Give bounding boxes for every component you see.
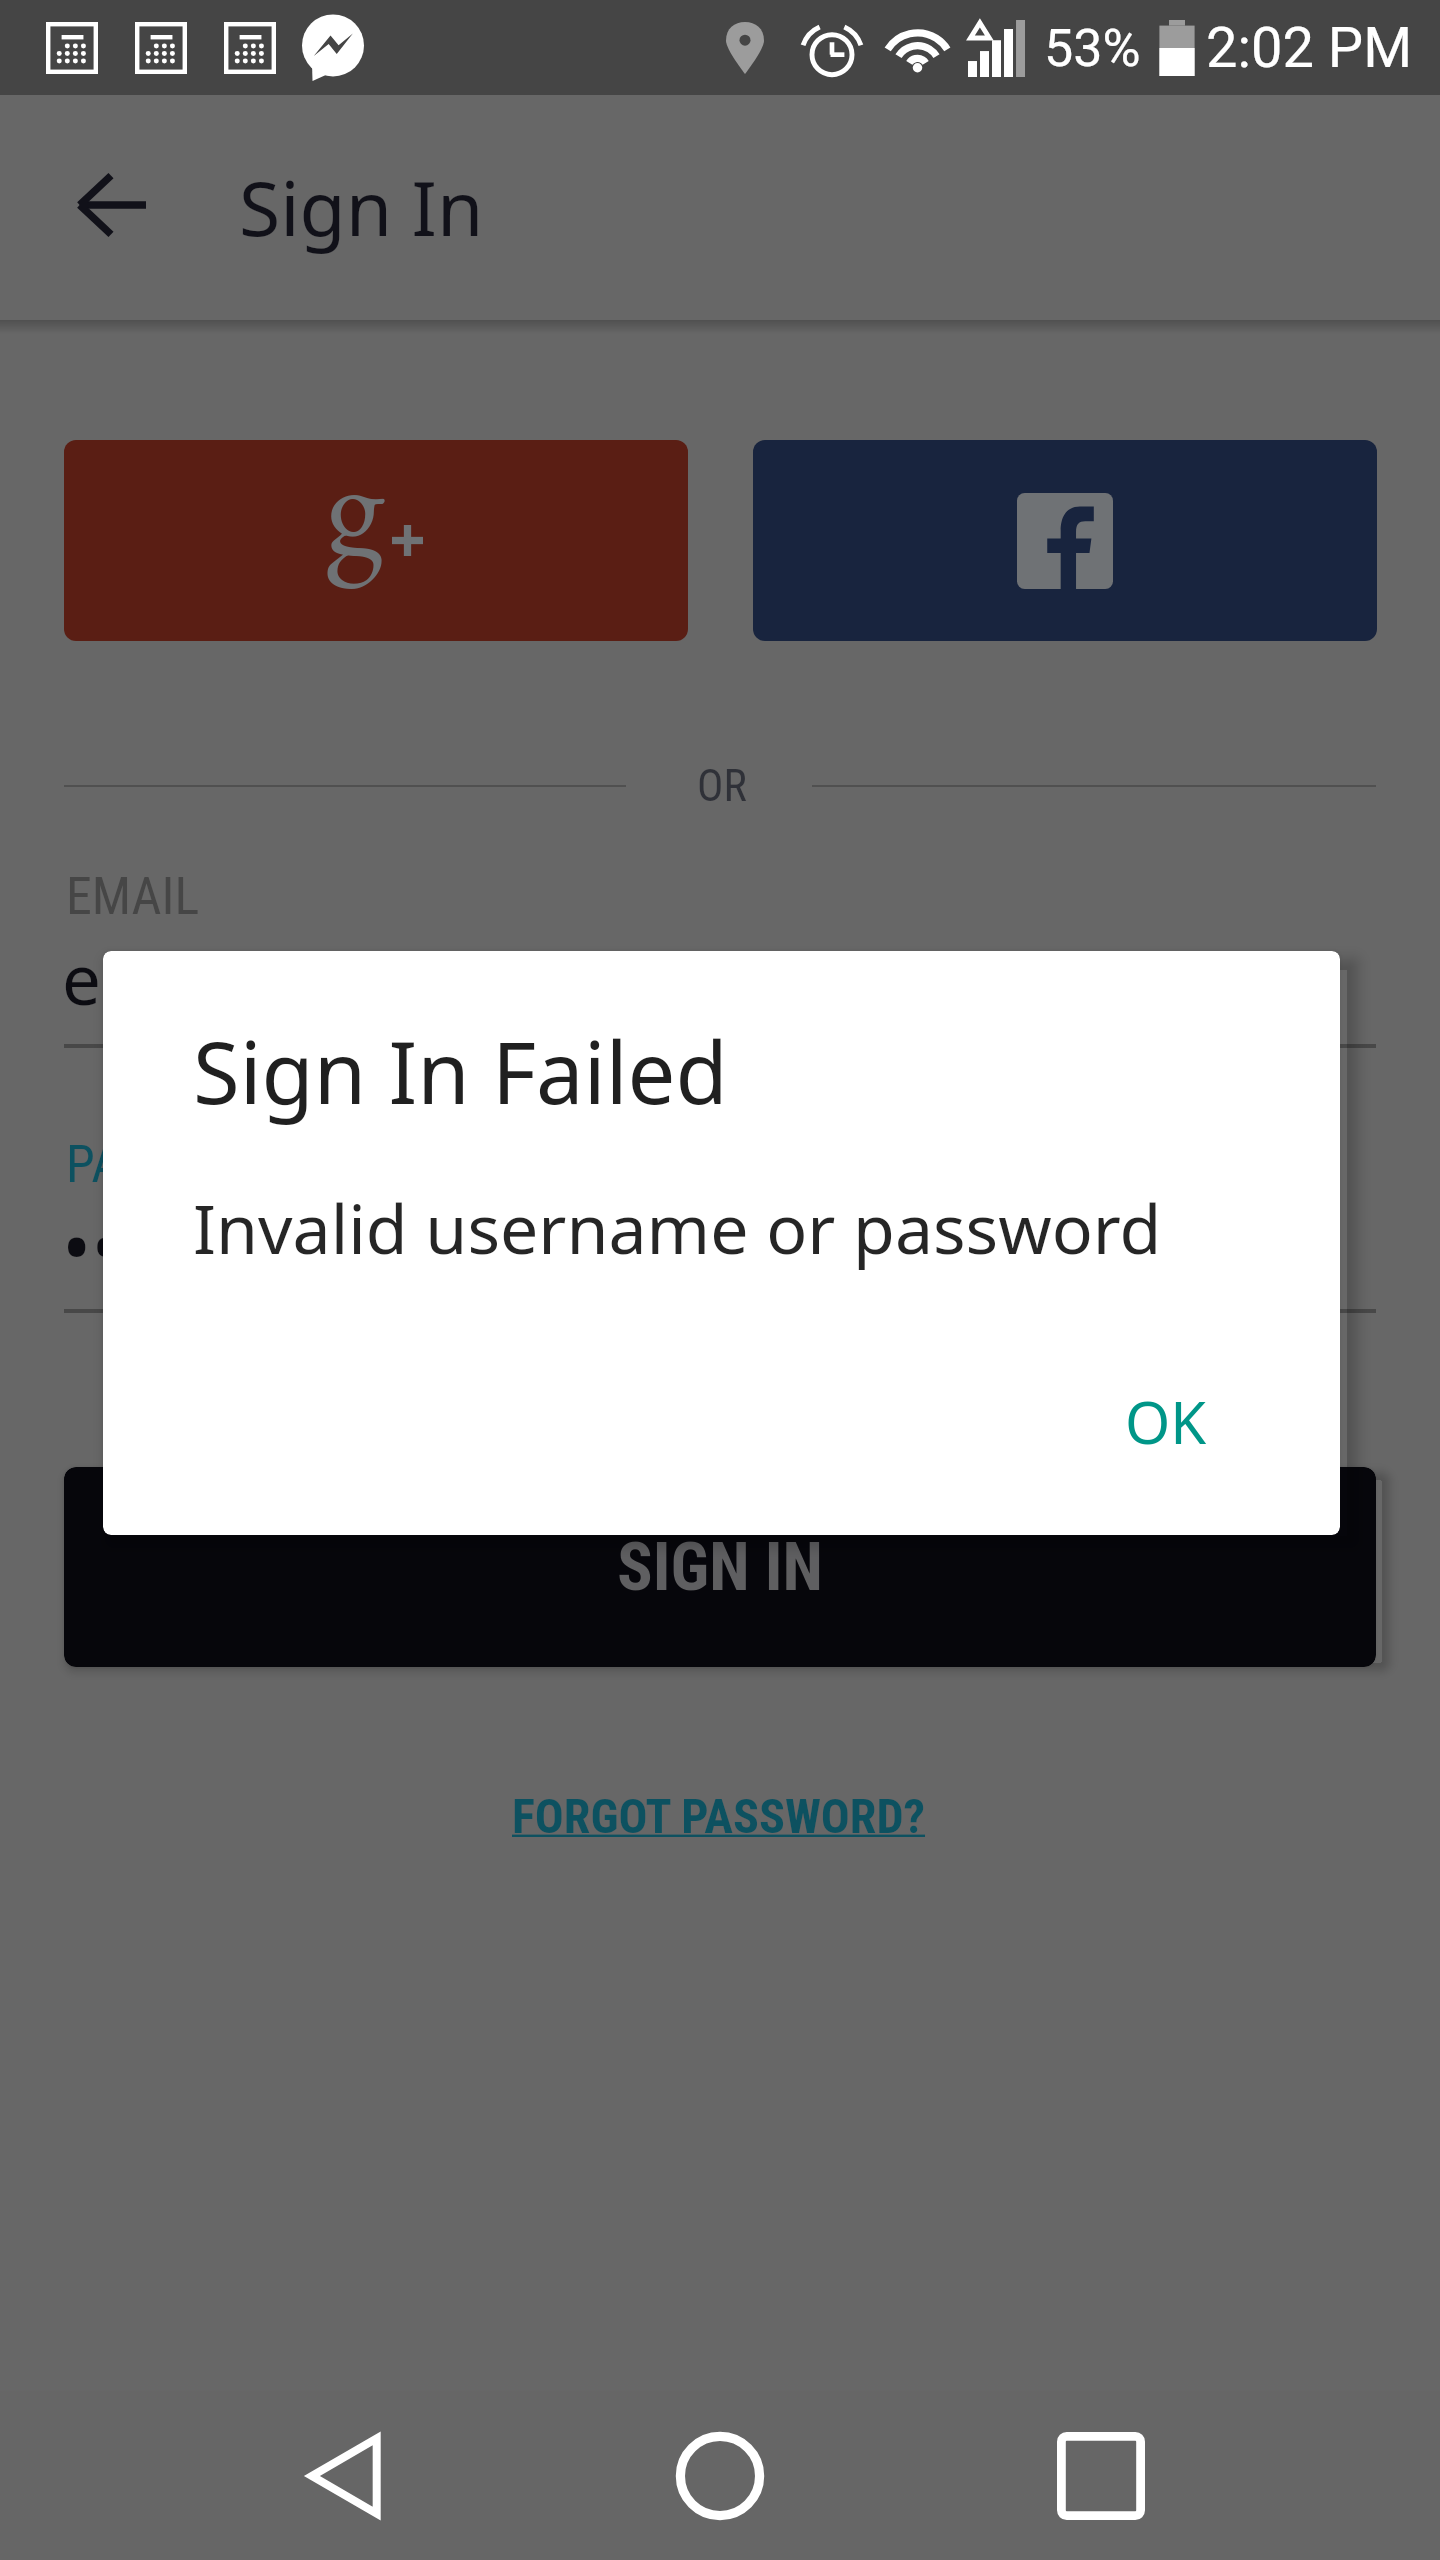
staticText: 53% [1044,18,1141,79]
button[interactable]: Sign in with Google Plus [64,440,688,641]
staticText: 2:02 PM [1206,15,1413,81]
button[interactable]: Navigate up [48,142,174,268]
button[interactable]: SIGN IN [64,1467,1376,1667]
staticText: Invalid username or password [193,1181,1162,1274]
button[interactable]: Sign in with Facebook [753,440,1377,641]
staticText: •••••• [62,1193,238,1299]
button[interactable]: Back [270,2391,420,2560]
button[interactable]: Home [645,2391,795,2560]
staticText: EMAIL [66,866,200,927]
staticText: SIGN IN [617,1529,824,1606]
button[interactable]: Recent apps [1026,2391,1176,2560]
staticText: OR [697,760,747,812]
staticText: Sign In Failed [193,1013,728,1129]
staticText: FORGOT PASSWORD? [512,1788,926,1844]
staticText: PASSWORD [66,1134,304,1195]
staticText: Sign In [239,156,484,258]
staticText: e [62,931,101,1025]
button[interactable]: OK [1089,1356,1243,1487]
button[interactable]: FORGOT PASSWORD? [472,1766,966,1866]
button[interactable]: Password field [64,1124,1376,1313]
staticText: OK [1125,1382,1207,1461]
staticText: g [326,440,384,591]
button[interactable]: Email field [64,856,1376,1048]
